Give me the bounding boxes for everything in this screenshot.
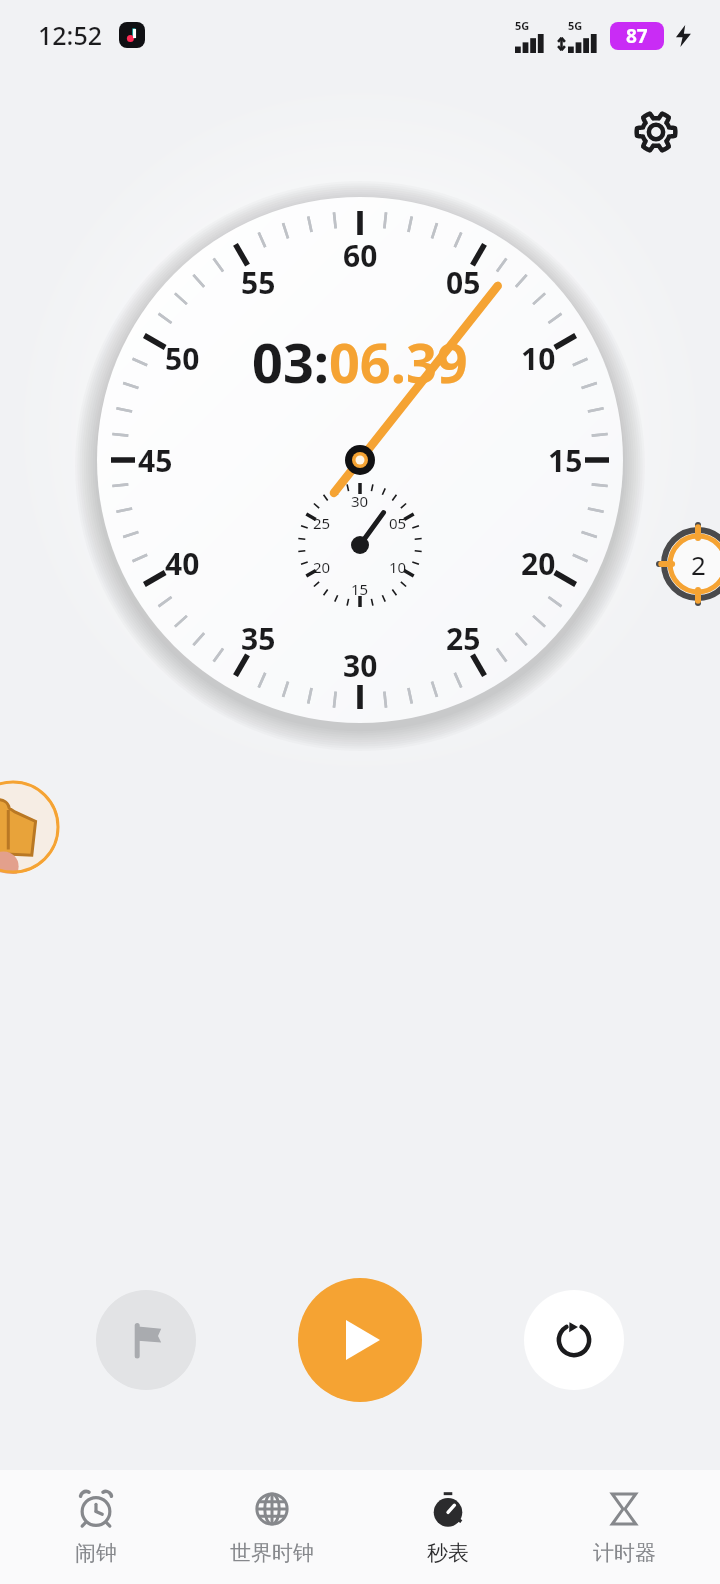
button[interactable]: Settings <box>616 92 696 172</box>
staticText: 45 <box>138 440 173 481</box>
staticText: 秒表 <box>427 1540 469 1566</box>
button[interactable]: Timer shortcut <box>658 524 720 604</box>
button[interactable]: 计时器 <box>544 1482 704 1572</box>
staticText: 05 <box>389 513 407 533</box>
staticText: 30 <box>343 645 378 686</box>
button[interactable]: 秒表 <box>368 1482 528 1572</box>
staticText: 5G <box>515 18 530 33</box>
button[interactable]: 世界时钟 <box>192 1482 352 1572</box>
button[interactable]: Reset <box>524 1290 624 1390</box>
staticText: 30 <box>351 491 369 511</box>
staticText: 60 <box>343 235 378 276</box>
staticText: 03:06.39 <box>252 325 468 399</box>
staticText: 35 <box>241 618 276 659</box>
staticText: 87 <box>626 23 648 49</box>
button[interactable]: 闹钟 <box>16 1482 176 1572</box>
staticText: 12:52 <box>38 18 103 52</box>
staticText: 25 <box>313 513 331 533</box>
staticText: 20 <box>313 557 331 577</box>
staticText: 55 <box>241 262 276 303</box>
staticText: 50 <box>165 338 200 379</box>
staticText: 计时器 <box>593 1540 656 1566</box>
staticText: 20 <box>521 543 556 584</box>
staticText: 10 <box>389 557 407 577</box>
staticText: 15 <box>351 579 369 599</box>
staticText: 05 <box>446 262 481 303</box>
staticText: 15 <box>548 440 583 481</box>
staticText: 闹钟 <box>75 1540 117 1566</box>
staticText: 2 <box>691 547 706 582</box>
staticText: 40 <box>165 543 200 584</box>
staticText: 5G <box>568 18 583 33</box>
button[interactable]: Lap <box>96 1290 196 1390</box>
staticText: 25 <box>446 618 481 659</box>
button[interactable]: Floating shortcut <box>0 780 60 874</box>
staticText: 世界时钟 <box>230 1540 314 1566</box>
button[interactable]: Start <box>298 1278 422 1402</box>
staticText: 10 <box>521 338 556 379</box>
